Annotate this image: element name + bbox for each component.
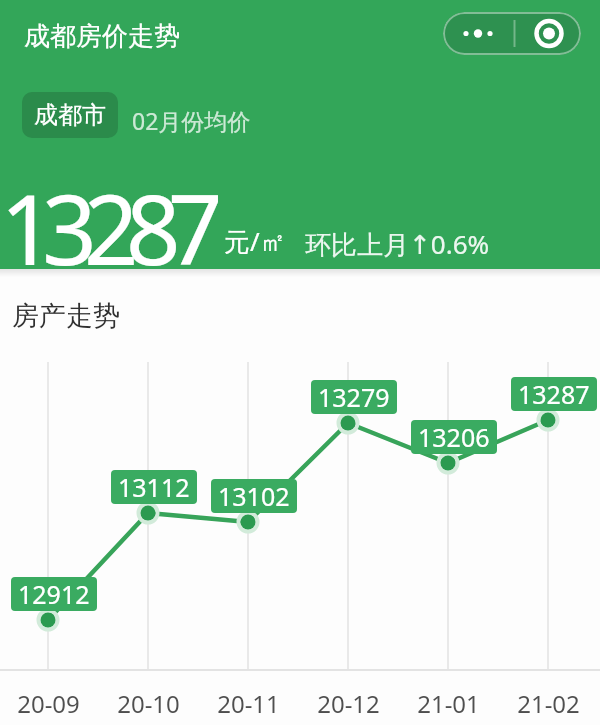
staticText: 20-09 bbox=[17, 687, 80, 720]
staticText: 12912 bbox=[18, 577, 90, 611]
staticText: 成都房价走势 bbox=[24, 20, 180, 53]
staticText: 13102 bbox=[218, 479, 290, 513]
staticText: 20-10 bbox=[117, 687, 180, 720]
staticText: 21-01 bbox=[417, 687, 480, 720]
staticText: 13279 bbox=[318, 380, 390, 414]
staticText: 13206 bbox=[418, 420, 490, 454]
staticText: 20-11 bbox=[217, 687, 280, 720]
staticText: 20-12 bbox=[317, 687, 380, 720]
staticText: 成都市 bbox=[34, 100, 106, 130]
button[interactable]: 成都市 bbox=[22, 92, 118, 138]
staticText: 13287 bbox=[0, 162, 210, 293]
staticText: 元/㎡ bbox=[224, 223, 286, 259]
staticText: 02月份均价 bbox=[132, 105, 251, 136]
staticText: 21-02 bbox=[517, 687, 580, 720]
staticText: 环比上月↑0.6% bbox=[305, 226, 490, 262]
staticText: 房产走势 bbox=[12, 299, 120, 333]
staticText: 13112 bbox=[118, 470, 190, 504]
staticText: 13287 bbox=[518, 377, 590, 411]
button[interactable] bbox=[443, 12, 581, 55]
